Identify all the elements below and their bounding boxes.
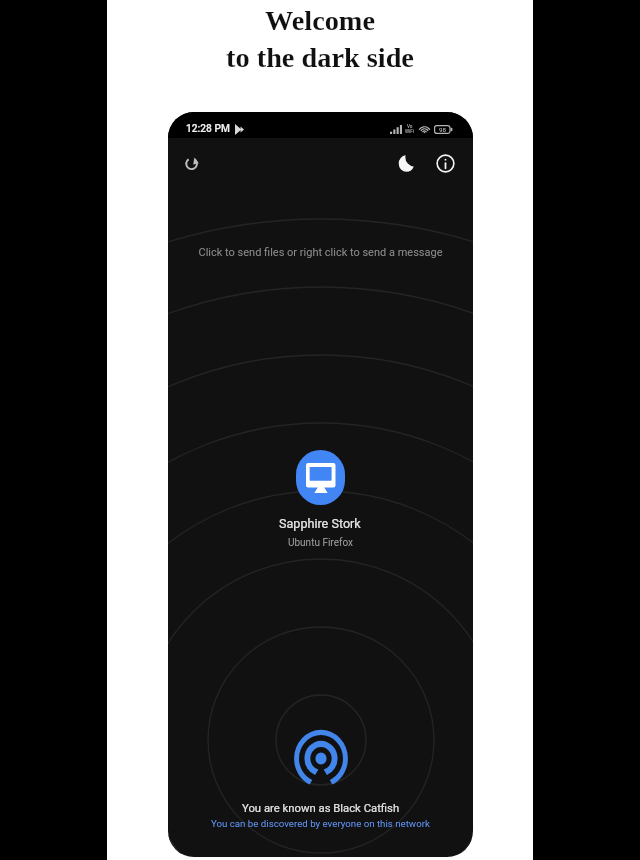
button[interactable]: Toggle dark mode [388, 145, 424, 181]
staticText: 98 [439, 126, 446, 133]
staticText: Vo [407, 124, 413, 129]
staticText: Sapphire Stork [279, 516, 361, 531]
staticText: Ubuntu Firefox [288, 537, 353, 549]
button[interactable]: Refresh [174, 145, 210, 181]
button[interactable]: Info [427, 145, 463, 181]
button[interactable]: Sapphire Stork device [296, 450, 345, 505]
button[interactable]: You can be discovered by everyone on thi… [211, 818, 430, 829]
staticText: You are known as Black Catfish [242, 802, 400, 815]
staticText: Welcome to the dark side [107, 5, 533, 73]
staticText: WiFi [405, 129, 414, 134]
staticText: 12:28 PM [186, 123, 230, 135]
staticText: Click to send files or right click to se… [168, 246, 473, 259]
